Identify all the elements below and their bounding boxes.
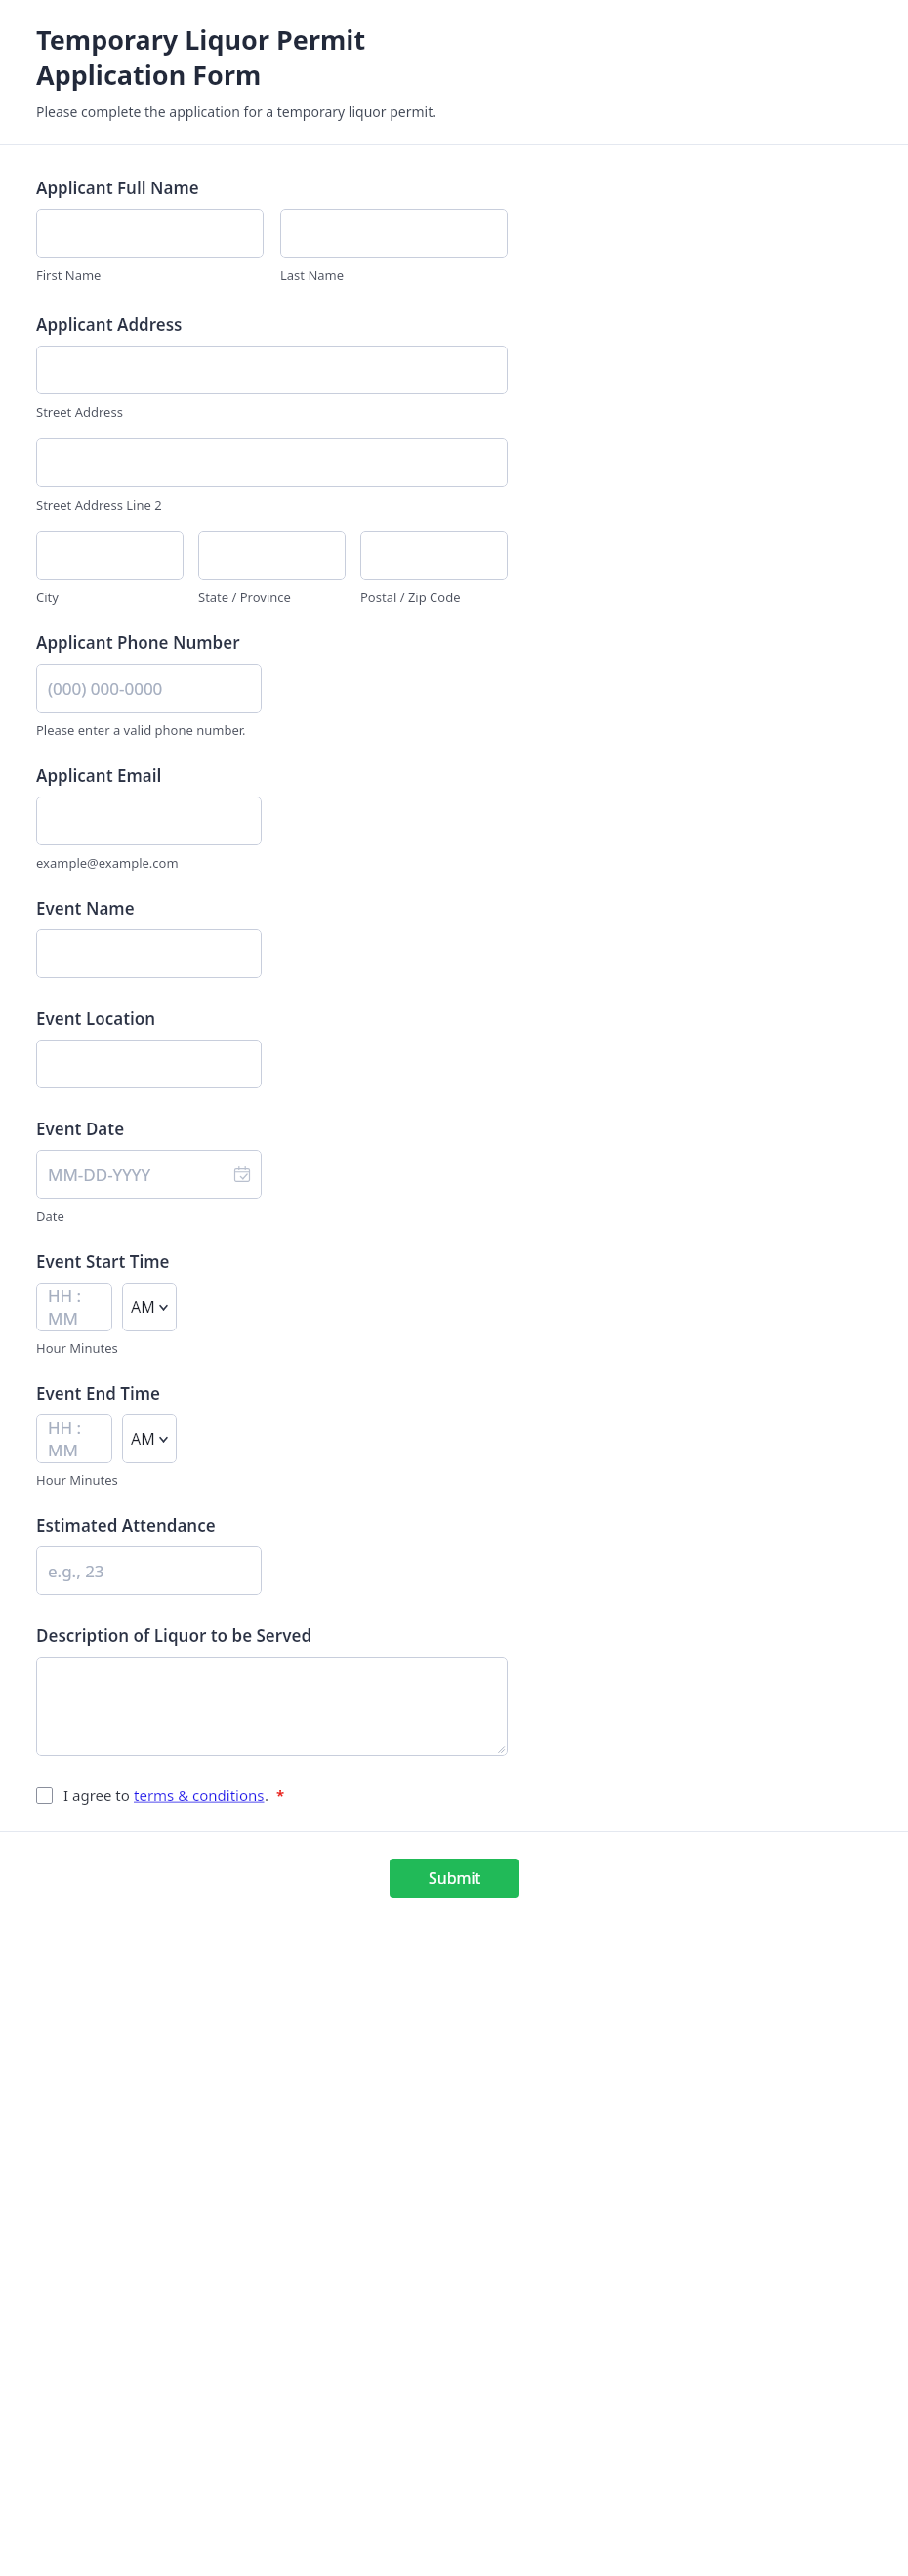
button[interactable] [36, 209, 264, 258]
button[interactable]: I agree to [36, 1785, 285, 1805]
staticText: Event Start Time [36, 1250, 170, 1273]
staticText: I agree to [63, 1785, 134, 1805]
staticText: Hour Minutes [36, 1339, 118, 1357]
staticText: Event Date [36, 1118, 125, 1140]
button[interactable]: MM-DD-YYYY [36, 1150, 262, 1199]
staticText: State / Province [198, 589, 291, 606]
staticText: HH : MM [48, 1416, 101, 1461]
staticText: * [276, 1785, 285, 1805]
staticText: MM-DD-YYYY [48, 1164, 151, 1186]
staticText: . [265, 1785, 269, 1805]
button[interactable]: AM [122, 1283, 177, 1331]
staticText: Applicant Email [36, 764, 162, 787]
staticText: Street Address [36, 403, 123, 421]
button[interactable]: AM [122, 1414, 177, 1463]
staticText: First Name [36, 266, 102, 284]
button[interactable] [36, 1040, 262, 1088]
button[interactable] [36, 346, 508, 394]
staticText: Last Name [280, 266, 345, 284]
button[interactable] [36, 797, 262, 845]
staticText: Event Location [36, 1007, 156, 1030]
staticText: Event End Time [36, 1382, 161, 1405]
staticText: Temporary Liquor Permit Application Form [36, 21, 466, 93]
staticText: Street Address Line 2 [36, 496, 162, 513]
button[interactable] [36, 1657, 508, 1756]
staticText: City [36, 589, 59, 606]
staticText: example@example.com [36, 854, 179, 872]
staticText: Estimated Attendance [36, 1514, 216, 1536]
staticText: Please complete the application for a te… [36, 102, 437, 121]
button[interactable]: HH : MM [36, 1414, 112, 1463]
staticText: Applicant Phone Number [36, 632, 240, 654]
staticText: Please enter a valid phone number. [36, 721, 246, 739]
staticText: Hour Minutes [36, 1471, 118, 1489]
staticText: Description of Liquor to be Served [36, 1624, 312, 1647]
staticText: e.g., 23 [48, 1560, 104, 1582]
button[interactable]: HH : MM [36, 1283, 112, 1331]
button[interactable] [36, 438, 508, 487]
button[interactable]: e.g., 23 [36, 1546, 262, 1595]
button[interactable] [36, 929, 262, 978]
staticText: AM [131, 1428, 155, 1450]
button[interactable] [36, 531, 184, 580]
staticText: Submit [429, 1867, 481, 1889]
button[interactable]: terms & conditions [134, 1785, 265, 1805]
staticText: (000) 000-0000 [48, 677, 163, 700]
staticText: Event Name [36, 897, 135, 920]
staticText: Postal / Zip Code [360, 589, 461, 606]
staticText: HH : MM [48, 1285, 101, 1329]
button[interactable]: (000) 000-0000 [36, 664, 262, 713]
button[interactable] [360, 531, 508, 580]
other: Open calendar [234, 1166, 250, 1182]
staticText: AM [131, 1296, 155, 1318]
staticText: Applicant Full Name [36, 177, 199, 199]
staticText: Date [36, 1207, 64, 1225]
button[interactable] [198, 531, 346, 580]
button[interactable] [280, 209, 508, 258]
staticText: Applicant Address [36, 313, 183, 336]
button[interactable]: Submit [390, 1859, 519, 1898]
